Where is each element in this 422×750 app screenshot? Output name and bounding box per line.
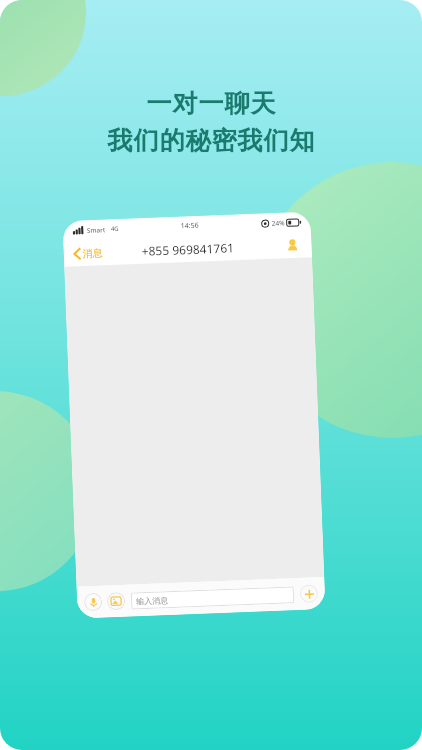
staticText: 4G [111,225,119,233]
staticText: 输入消息 [136,595,168,606]
staticText: 24% [271,218,285,228]
staticText: 消息 [82,246,103,260]
staticText: 我们的秘密我们知 [107,125,315,156]
button[interactable]: More options [300,584,318,603]
button[interactable]: Contact profile [283,236,302,254]
button[interactable]: 输入消息 [131,586,294,609]
staticText: Smart [87,225,106,235]
staticText: 一对一聊天 [146,88,276,119]
button[interactable]: Voice message [84,593,102,611]
button[interactable]: Send image [107,592,125,610]
button[interactable]: 消息 [71,243,105,264]
staticText: 14:56 [181,221,199,231]
staticText: +855 969841761 [141,239,235,259]
